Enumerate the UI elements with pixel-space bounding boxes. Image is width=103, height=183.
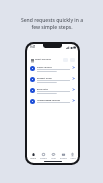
staticText: Home	[30, 157, 36, 160]
staticText: Book Hotel	[37, 88, 49, 91]
staticText: Request a Ride	[37, 77, 52, 80]
button[interactable]: Menu	[30, 58, 34, 62]
staticText: Guest Services	[35, 58, 51, 61]
button[interactable]: Housekeeping Services	[27, 98, 78, 109]
staticText: Chat	[51, 157, 56, 160]
staticText: Housekeeping Services	[37, 99, 61, 102]
staticText: 9:41	[30, 45, 36, 49]
button[interactable]: Public Services	[27, 65, 78, 76]
button[interactable]: More	[68, 151, 77, 160]
staticText: Orders	[40, 157, 47, 160]
button[interactable]: Request a Ride	[27, 76, 78, 87]
button[interactable]: Orders	[38, 151, 48, 160]
staticText: few simple steps.	[31, 24, 73, 31]
button[interactable]: Chat	[48, 151, 58, 160]
staticText: Send requests quickly in a	[21, 17, 83, 24]
staticText: Rooms	[60, 157, 67, 160]
staticText: More	[70, 157, 76, 160]
button[interactable]: Rooms	[58, 151, 68, 160]
staticText: Public Services	[37, 66, 52, 69]
button[interactable]: Book Hotel	[27, 87, 78, 98]
button[interactable]: Home	[28, 151, 38, 160]
